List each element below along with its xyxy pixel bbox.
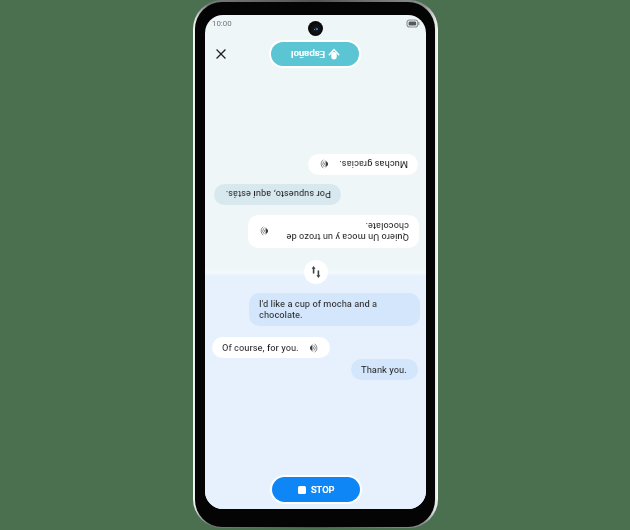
staticText: 10:00 (212, 19, 232, 28)
staticText: Of course, for you. (222, 342, 299, 353)
staticText: STOP (311, 484, 335, 495)
button[interactable]: Español (271, 42, 359, 66)
button[interactable]: Quiero Un moca y un trozo de chocolate. (248, 215, 419, 248)
button[interactable]: Of course, for you. (212, 337, 330, 358)
staticText: Español (291, 49, 325, 60)
button[interactable]: Thank you. (351, 359, 418, 380)
staticText: I'd like a cup of mocha and a chocolate. (259, 298, 409, 321)
button[interactable]: Close (209, 42, 233, 66)
button[interactable]: Muchas gracias. (308, 154, 418, 175)
button[interactable]: Swap languages (304, 260, 328, 284)
staticText: Muchas gracias. (339, 159, 408, 170)
button[interactable]: STOP (272, 477, 360, 502)
button[interactable]: I'd like a cup of mocha and a chocolate. (249, 293, 420, 326)
staticText: Quiero Un moca y un trozo de chocolate. (279, 220, 409, 243)
staticText: Por supuesto, aquí estás. (225, 189, 331, 200)
staticText: Thank you. (361, 364, 407, 375)
button[interactable]: Por supuesto, aquí estás. (214, 184, 341, 205)
